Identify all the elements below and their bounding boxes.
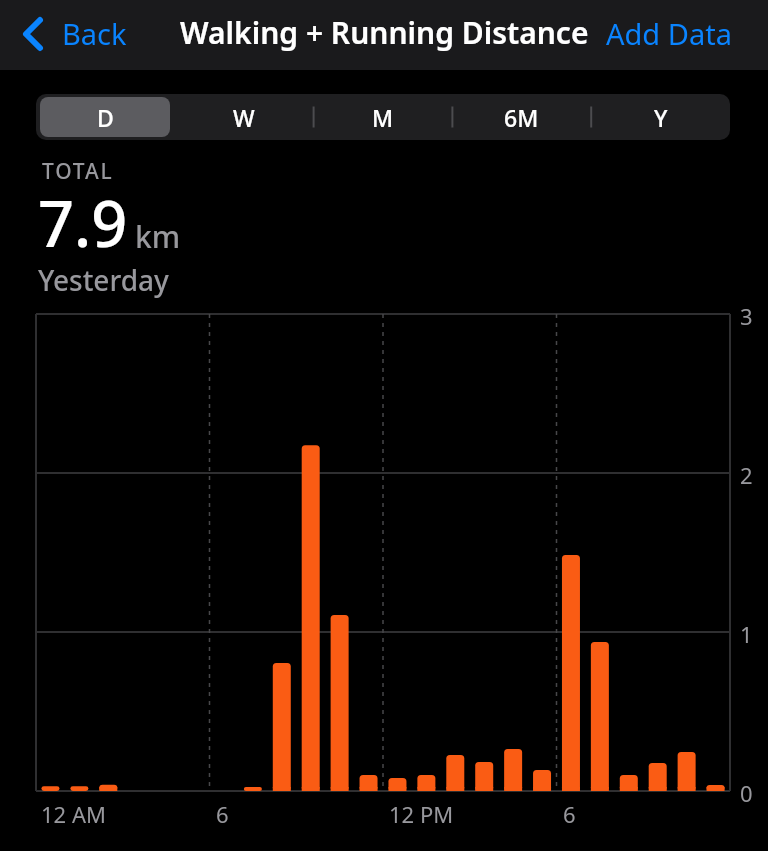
staticText: 12 AM <box>41 799 106 829</box>
staticText: 6 <box>563 799 576 829</box>
staticText: Add Data <box>606 14 732 53</box>
staticText: 3 <box>740 301 753 331</box>
staticText: 6M <box>504 102 539 133</box>
staticText: 2 <box>740 460 753 490</box>
staticText: 1 <box>740 619 753 649</box>
staticText: Y <box>654 102 668 133</box>
button[interactable]: Back <box>0 6 135 61</box>
button[interactable]: W <box>178 97 309 137</box>
button[interactable]: Y <box>595 97 726 137</box>
button[interactable]: M <box>317 97 448 137</box>
button[interactable]: 6M <box>456 97 587 137</box>
staticText: D <box>97 102 114 133</box>
staticText: 0 <box>740 778 753 808</box>
staticText: 6 <box>216 799 229 829</box>
staticText: Walking + Running Distance <box>180 12 589 53</box>
button[interactable]: D <box>40 97 170 137</box>
staticText: M <box>372 102 394 133</box>
staticText: 12 PM <box>389 799 454 829</box>
staticText: TOTAL <box>42 157 114 186</box>
staticText: Yesterday <box>38 261 169 299</box>
button[interactable]: Add Data <box>606 14 768 53</box>
staticText: W <box>233 102 255 133</box>
staticText: 7.9 <box>38 180 128 266</box>
staticText: Back <box>62 14 127 53</box>
staticText: km <box>135 216 181 257</box>
